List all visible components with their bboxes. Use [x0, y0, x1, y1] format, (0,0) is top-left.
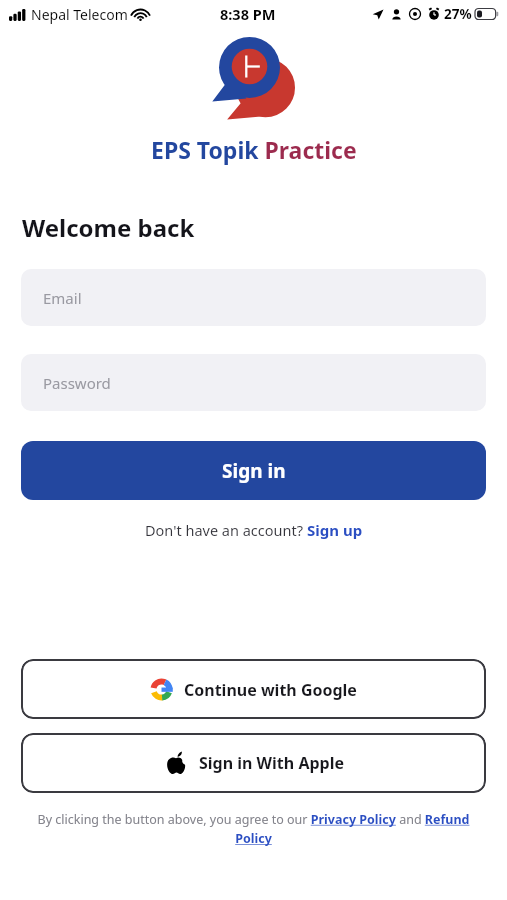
staticText: 27%	[444, 5, 472, 23]
button[interactable]: Sign in	[21, 441, 486, 500]
button[interactable]: Email	[21, 269, 486, 326]
staticText: Welcome back	[22, 211, 195, 244]
button[interactable]: Sign in With Apple	[21, 733, 486, 793]
staticText: Don't have an account?	[145, 520, 307, 540]
staticText: By clicking the button above, you agree …	[28, 811, 479, 847]
staticText: Nepal Telecom	[31, 5, 128, 24]
staticText: 8:38 PM	[220, 4, 276, 24]
staticText: EPS Topik Practice	[151, 134, 357, 165]
staticText: Sign in	[222, 458, 286, 484]
staticText: Sign up	[307, 520, 363, 540]
button[interactable]: Continue with Google	[21, 659, 486, 719]
button[interactable]: Password	[21, 354, 486, 411]
button[interactable]: Don't have an account?	[141, 518, 367, 542]
staticText: Continue with Google	[184, 679, 357, 701]
staticText: Password	[43, 373, 111, 393]
staticText: Email	[43, 288, 82, 308]
staticText: Sign in With Apple	[199, 752, 344, 774]
